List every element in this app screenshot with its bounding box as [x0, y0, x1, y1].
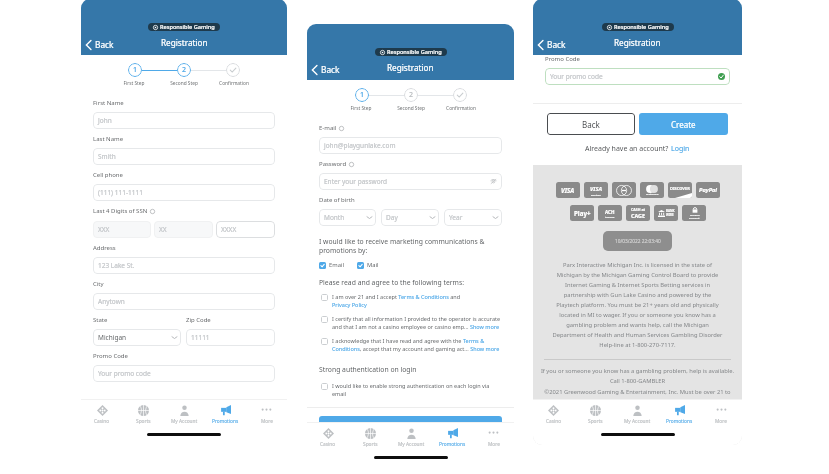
button[interactable]: Step [453, 88, 467, 102]
button[interactable]: Casino [81, 405, 123, 426]
button[interactable]: Payment method [682, 205, 706, 221]
staticText: BANK [666, 209, 675, 213]
staticText: Back [95, 39, 114, 50]
button[interactable]: Your promo code [545, 68, 730, 85]
staticText: Back [547, 39, 566, 50]
button[interactable]: Back [547, 113, 635, 135]
button[interactable]: John [93, 112, 275, 129]
button[interactable]: (111) 111-1111 [93, 184, 275, 201]
staticText: Michigan [98, 333, 172, 342]
button[interactable]: Michigan [93, 329, 181, 346]
staticText: Back [321, 64, 340, 75]
button[interactable]: Payment method [640, 182, 664, 198]
staticText: 1 [133, 65, 138, 75]
staticText: Casino [320, 441, 336, 448]
button[interactable]: Promotions [658, 405, 700, 426]
button[interactable] [321, 338, 328, 345]
button[interactable]: 123 Lake St. [93, 257, 275, 274]
button[interactable]: Payment method [696, 182, 720, 198]
button[interactable]: Anytown [93, 293, 275, 310]
button[interactable]: I am over 21 and I accept Terms & Condit… [321, 293, 478, 309]
button[interactable] [319, 262, 326, 269]
button[interactable]: Casino [533, 405, 574, 426]
staticText: I acknowledge that I have read and agree… [332, 337, 502, 353]
button[interactable]: Payment method [570, 205, 594, 221]
staticText: Promo Code [545, 55, 580, 63]
staticText: Smith [98, 152, 270, 161]
button[interactable]: Enter your password [319, 173, 502, 190]
button[interactable]: My Account [391, 428, 432, 449]
button[interactable]: Responsible Gaming [148, 23, 220, 31]
staticText: Password [319, 160, 347, 168]
staticText: Responsible Gaming [160, 23, 215, 31]
staticText: VISA [561, 186, 575, 194]
staticText: Second Step [159, 80, 209, 87]
button[interactable]: Back [310, 64, 341, 75]
button[interactable]: Sports [349, 428, 391, 449]
button[interactable]: More [246, 405, 287, 426]
button[interactable]: My Account [164, 405, 205, 426]
button[interactable]: Smith [93, 148, 275, 165]
button[interactable]: Step [128, 63, 142, 77]
button[interactable]: Payment method [668, 182, 692, 198]
staticText: Cell phone [93, 171, 123, 179]
staticText: Last 4 Digits of SSN [93, 207, 148, 215]
button[interactable]: More [700, 405, 742, 426]
button[interactable]: More [473, 428, 514, 449]
button[interactable]: Step [355, 88, 369, 102]
staticText: john@playgunlake.com [324, 141, 497, 150]
staticText: Create [671, 119, 696, 130]
staticText: Responsible Gaming [614, 23, 669, 31]
staticText: Casino [546, 418, 562, 425]
button[interactable]: Payment method [654, 205, 678, 221]
button[interactable]: Step [226, 63, 240, 77]
button[interactable]: Responsible Gaming [602, 23, 674, 31]
button[interactable]: Sports [123, 405, 164, 426]
staticText: VISA [590, 185, 602, 193]
staticText: Registration [614, 37, 661, 48]
button[interactable]: I would like to enable strong authentica… [321, 382, 502, 398]
button[interactable]: Year [444, 209, 502, 226]
button[interactable]: XXX [93, 221, 151, 238]
button[interactable]: Promotions [205, 405, 246, 426]
button[interactable]: Back [536, 39, 567, 50]
button[interactable]: Day [381, 209, 439, 226]
button[interactable] [321, 383, 328, 390]
button[interactable]: Already have an account? [547, 144, 728, 154]
button[interactable] [321, 294, 328, 301]
button[interactable] [321, 316, 328, 323]
staticText: Anytown [98, 297, 270, 306]
staticText: Sports [363, 441, 378, 448]
button[interactable]: Casino [307, 428, 349, 449]
button[interactable]: Payment method [584, 182, 608, 198]
staticText: Electron [591, 193, 601, 196]
button[interactable]: 10/03/2022 22:03:40 [603, 231, 672, 251]
staticText: Month [324, 213, 367, 222]
button[interactable]: Step [404, 88, 418, 102]
button[interactable]: Payment method [598, 205, 622, 221]
button[interactable]: 11111 [186, 329, 275, 346]
button[interactable]: Responsible Gaming [375, 48, 447, 56]
staticText: Last Name [93, 135, 124, 143]
button[interactable]: john@playgunlake.com [319, 137, 502, 154]
button[interactable]: XXXX [216, 221, 275, 238]
button[interactable]: My Account [616, 405, 658, 426]
button[interactable]: Back [84, 39, 115, 50]
button[interactable]: Sports [574, 405, 616, 426]
button[interactable]: Payment method [556, 182, 580, 198]
button[interactable]: Month [319, 209, 376, 226]
button[interactable]: Payment method [612, 182, 636, 198]
staticText: XX [159, 225, 208, 234]
button[interactable] [357, 262, 364, 269]
button[interactable]: Create [639, 113, 728, 135]
button[interactable]: Your promo code [93, 365, 275, 382]
button[interactable]: Payment method [626, 205, 650, 221]
button[interactable]: Step [177, 63, 191, 77]
button[interactable]: Promotions [432, 428, 473, 449]
button[interactable]: I certify that all information I provide… [321, 315, 502, 331]
staticText: First Name [93, 99, 124, 107]
button[interactable]: XX [154, 221, 213, 238]
staticText: My Account [398, 441, 425, 448]
button[interactable]: I acknowledge that I have read and agree… [321, 337, 502, 353]
button[interactable]: Next [319, 416, 502, 440]
